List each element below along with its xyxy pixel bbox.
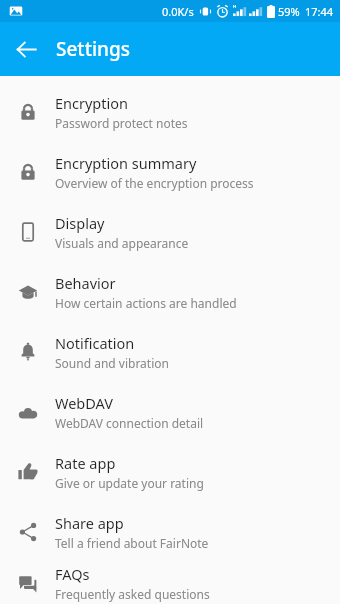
staticText: Visuals and appearance	[55, 235, 189, 251]
staticText: 0.0K/s	[162, 4, 194, 19]
staticText: Give or update your rating	[55, 475, 204, 491]
staticText: How certain actions are handled	[55, 295, 237, 311]
staticText: Frequently asked questions	[55, 586, 210, 602]
staticText: Tell a friend about FairNote	[55, 535, 209, 551]
button[interactable]: Encryption summary	[0, 142, 340, 202]
staticText: 17:44	[305, 4, 334, 19]
button[interactable]: Rate app	[0, 442, 340, 502]
button[interactable]: WebDAV	[0, 382, 340, 442]
button[interactable]: Share app	[0, 502, 340, 562]
staticText: FAQs	[55, 564, 90, 584]
staticText: 59%	[278, 4, 300, 19]
staticText: Overview of the encryption process	[55, 175, 254, 191]
staticText: WebDAV	[55, 393, 113, 413]
staticText: Display	[55, 213, 105, 233]
staticText: Notification	[55, 333, 135, 353]
button[interactable]: Display	[0, 202, 340, 262]
button[interactable]: Behavior	[0, 262, 340, 322]
staticText: Encryption summary	[55, 153, 197, 173]
button[interactable]: Notification	[0, 322, 340, 382]
staticText: Sound and vibration	[55, 355, 169, 371]
staticText: Encryption	[55, 93, 128, 113]
staticText: Settings	[56, 36, 130, 62]
button[interactable]: FAQs	[0, 562, 340, 604]
staticText: Share app	[55, 513, 124, 533]
button[interactable]: Encryption	[0, 82, 340, 142]
staticText: Behavior	[55, 273, 116, 293]
staticText: Password protect notes	[55, 115, 188, 131]
staticText: Rate app	[55, 453, 116, 473]
button[interactable]: Back	[6, 29, 46, 69]
staticText: WebDAV connection detail	[55, 415, 204, 431]
